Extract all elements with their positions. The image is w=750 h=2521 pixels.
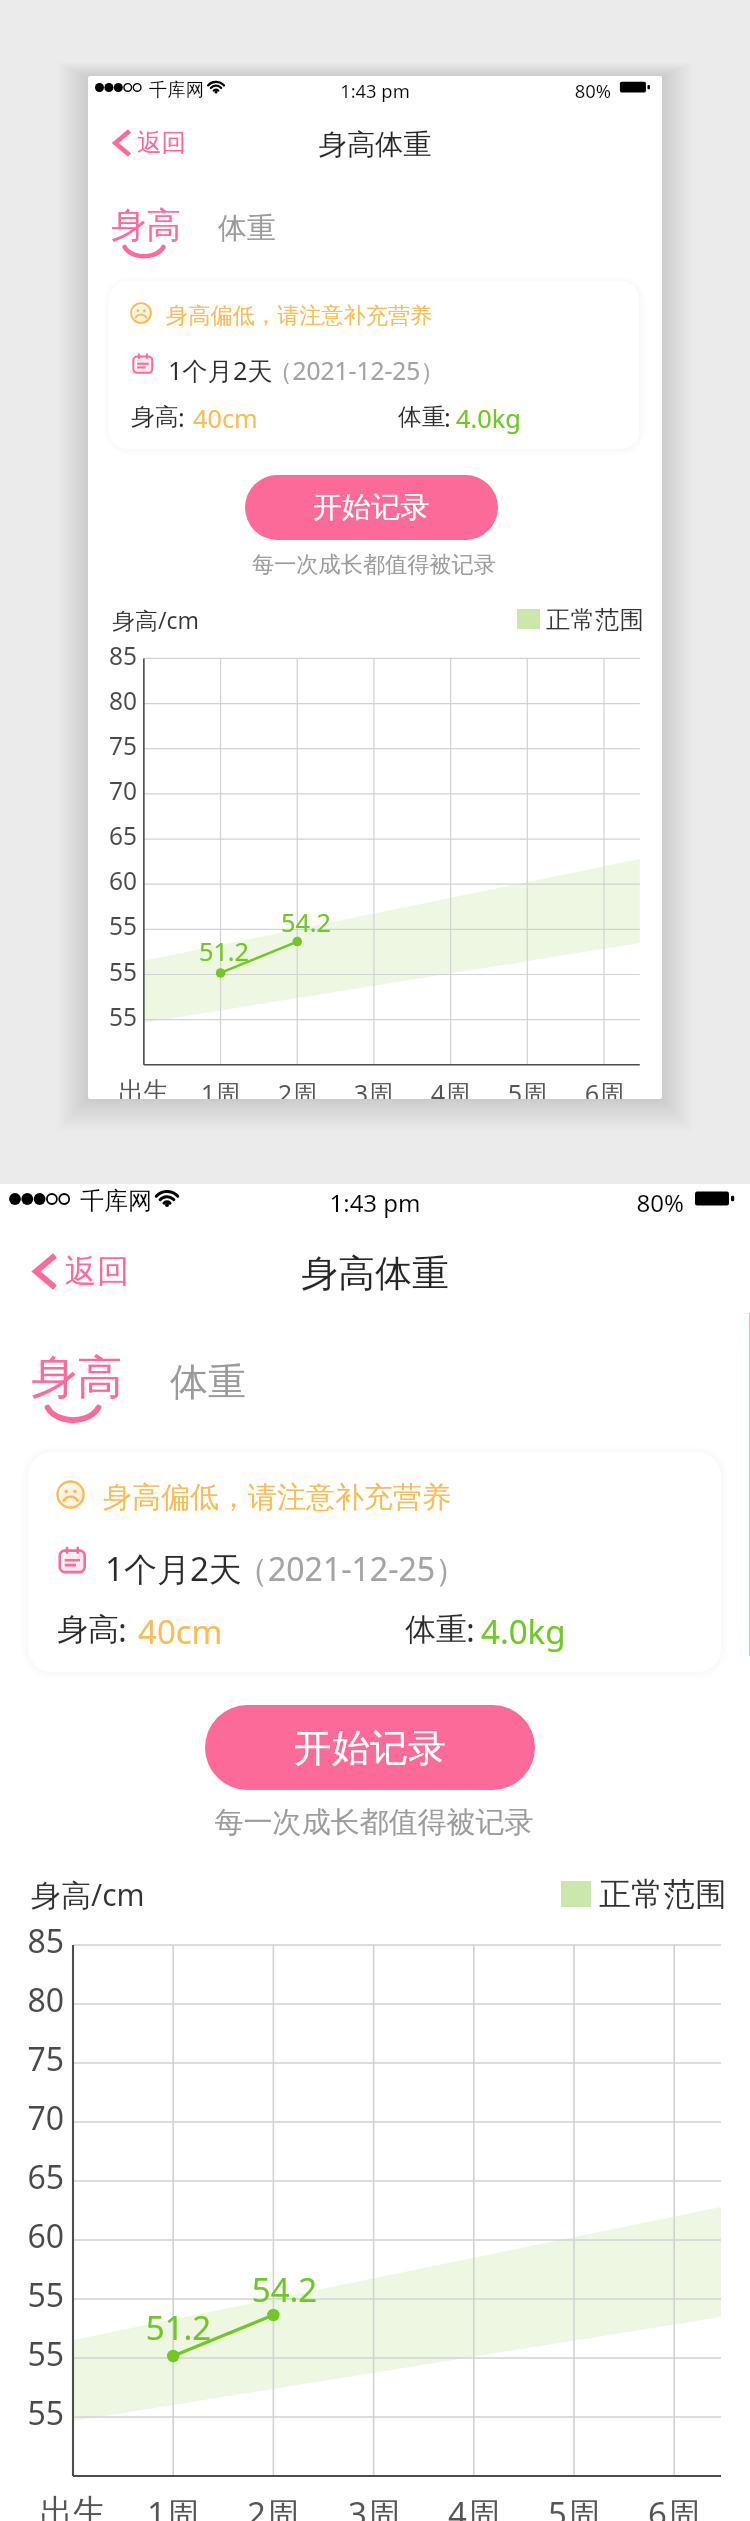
staticText: 身高/cm (31, 1874, 145, 1915)
button[interactable]: 返回 (107, 121, 192, 164)
staticText: 1个月2天 (168, 353, 273, 387)
button[interactable]: 身高 (106, 201, 186, 263)
staticText: 身高/cm (112, 604, 199, 635)
staticText: : (444, 400, 451, 434)
staticText: : (118, 1607, 127, 1652)
staticText: 2周 (263, 1076, 332, 1099)
staticText: 80% (547, 78, 611, 103)
staticText: 51.2 (126, 2305, 231, 2350)
staticText: 1周 (186, 1076, 255, 1099)
staticText: : (178, 400, 185, 434)
staticText: 80 (0, 1978, 64, 2022)
staticText: 2周 (228, 2491, 318, 2521)
staticText: 80 (88, 684, 137, 717)
staticText: 55 (0, 2391, 64, 2435)
staticText: 身高 (57, 1610, 119, 1649)
staticText: 1:43 pm (0, 1186, 750, 1219)
staticText: 60 (88, 864, 137, 897)
staticText: 1个月2天 (105, 1546, 242, 1591)
staticText: 65 (88, 819, 137, 852)
staticText: 75 (0, 2037, 64, 2081)
staticText: 身高体重 (88, 127, 662, 163)
staticText: 6周 (629, 2491, 719, 2521)
staticText: 70 (88, 774, 137, 807)
staticText: 千库网 (149, 78, 205, 101)
staticText: 55 (88, 1000, 137, 1033)
staticText: 开始记录 (294, 1724, 446, 1772)
button[interactable]: 身高 (24, 1347, 128, 1428)
staticText: 75 (88, 729, 137, 762)
button[interactable]: 开始记录 (205, 1705, 535, 1790)
button[interactable]: 体重 (160, 1348, 256, 1416)
button[interactable]: 返回 (25, 1243, 137, 1299)
staticText: 4周 (429, 2491, 519, 2521)
button[interactable]: 开始记录 (245, 475, 498, 540)
staticText: 55 (88, 955, 137, 988)
button[interactable]: 体重 (210, 202, 285, 255)
staticText: 体重 (170, 1358, 246, 1406)
staticText: 身高 (111, 203, 182, 247)
staticText: 3周 (329, 2491, 419, 2521)
staticText: 54.2 (266, 905, 346, 939)
staticText: 每一次成长都值得被记录 (0, 1804, 748, 1841)
staticText: 返回 (65, 1251, 129, 1291)
staticText: : (466, 1607, 475, 1652)
button[interactable]: 身高偏低，请注意补充营养 (109, 281, 639, 449)
staticText: 4.0kg (456, 401, 521, 435)
staticText: 开始记录 (313, 489, 430, 526)
staticText: 体重 (398, 402, 446, 432)
staticText: 身高 (131, 402, 179, 432)
staticText: （2021-12-25） (236, 1547, 468, 1591)
staticText: 1周 (128, 2491, 218, 2521)
staticText: 85 (88, 639, 137, 672)
staticText: 51.2 (184, 934, 264, 968)
staticText: 身高偏低，请注意补充营养 (103, 1479, 451, 1516)
staticText: 40cm (193, 401, 258, 435)
staticText: 体重 (218, 210, 277, 247)
staticText: 1:43 pm (88, 78, 662, 103)
staticText: 出生 (28, 2491, 118, 2521)
staticText: 3周 (339, 1076, 408, 1099)
staticText: 55 (88, 909, 137, 942)
staticText: 出生 (109, 1076, 178, 1099)
staticText: 55 (0, 2273, 64, 2317)
staticText: 5周 (493, 1076, 562, 1099)
staticText: （2021-12-25） (268, 354, 445, 387)
staticText: 70 (0, 2096, 64, 2140)
staticText: 每一次成长都值得被记录 (88, 551, 660, 579)
staticText: 4.0kg (481, 1609, 566, 1654)
staticText: 55 (0, 2332, 64, 2376)
staticText: 5周 (529, 2491, 619, 2521)
staticText: 40cm (138, 1609, 223, 1654)
staticText: 正常范围 (546, 604, 644, 635)
staticText: 85 (0, 1919, 64, 1963)
staticText: 身高 (31, 1349, 123, 1407)
button[interactable]: 身高偏低，请注意补充营养 (28, 1452, 721, 1672)
staticText: 体重 (405, 1610, 467, 1649)
staticText: 60 (0, 2214, 64, 2258)
staticText: 6周 (570, 1076, 639, 1099)
staticText: 身高偏低，请注意补充营养 (166, 302, 433, 330)
staticText: 千库网 (80, 1186, 152, 1216)
staticText: 正常范围 (599, 1874, 727, 1914)
staticText: 返回 (137, 127, 186, 158)
staticText: 4周 (416, 1076, 485, 1099)
staticText: 80% (600, 1186, 684, 1219)
staticText: 65 (0, 2155, 64, 2199)
staticText: 身高体重 (0, 1250, 750, 1297)
staticText: 54.2 (232, 2267, 337, 2312)
